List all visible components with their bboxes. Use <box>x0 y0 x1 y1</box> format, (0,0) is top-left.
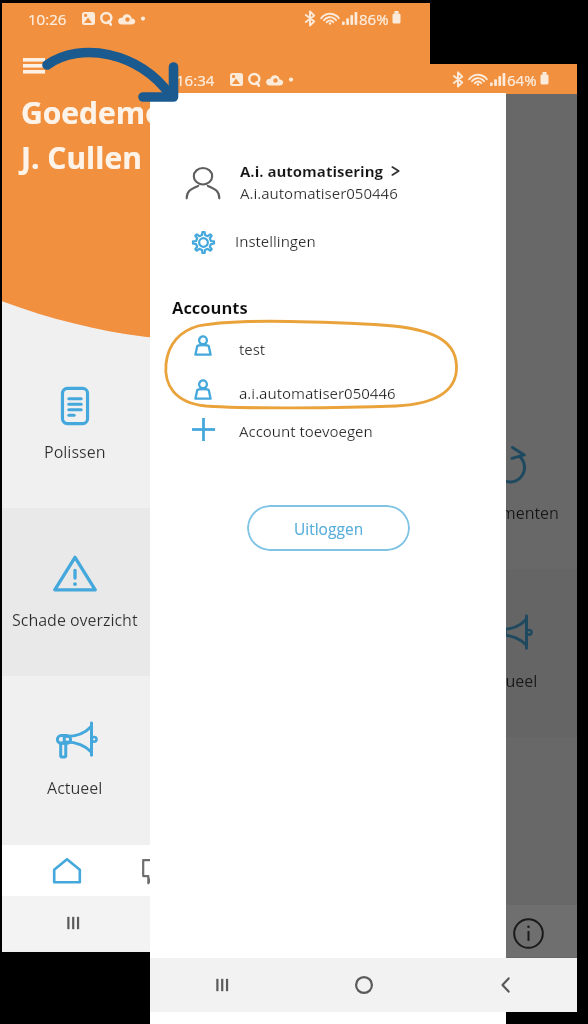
staticText: Schade overzicht <box>12 609 138 631</box>
button[interactable]: a.i.automatiser050446 <box>172 375 462 405</box>
button[interactable]: Polissen <box>0 340 179 508</box>
staticText: A.i.automatiser050446 <box>240 183 398 203</box>
staticText: 10:26 <box>28 9 67 29</box>
button[interactable]: Home <box>22 845 111 896</box>
staticText: test <box>239 339 266 359</box>
staticText: Documenten <box>462 502 559 524</box>
button[interactable]: Actueel <box>188 508 396 676</box>
button[interactable]: Schade overzicht <box>0 508 179 676</box>
button[interactable]: Instellingen <box>172 225 462 261</box>
staticText: J. Cullen <box>21 137 142 178</box>
button[interactable]: Actueel <box>0 676 179 844</box>
button[interactable]: Documenten <box>188 340 396 508</box>
staticText: 16:34 <box>176 70 215 90</box>
button[interactable]: Account toevoegen <box>172 413 462 447</box>
staticText: Uitloggen <box>294 518 364 539</box>
staticText: 86% <box>359 9 389 29</box>
staticText: Actueel <box>482 670 538 692</box>
button[interactable]: Uitloggen <box>247 505 410 551</box>
staticText: Polissen <box>229 502 291 524</box>
staticText: Account toevoegen <box>239 421 373 441</box>
button[interactable]: test <box>172 331 462 361</box>
button[interactable]: Chat <box>111 845 200 896</box>
staticText: Actueel <box>47 777 103 799</box>
staticText: Goedemorgen <box>21 92 232 133</box>
staticText: 64% <box>507 70 537 90</box>
button[interactable]: Menu <box>10 41 58 89</box>
staticText: a.i.automatiser050446 <box>239 383 396 403</box>
staticText: Instellingen <box>235 231 316 251</box>
staticText: A.i. automatisering <box>240 161 384 181</box>
staticText: Accounts <box>172 296 248 318</box>
staticText: Polissen <box>44 441 106 463</box>
button[interactable]: A.i. automatisering <box>172 161 462 207</box>
